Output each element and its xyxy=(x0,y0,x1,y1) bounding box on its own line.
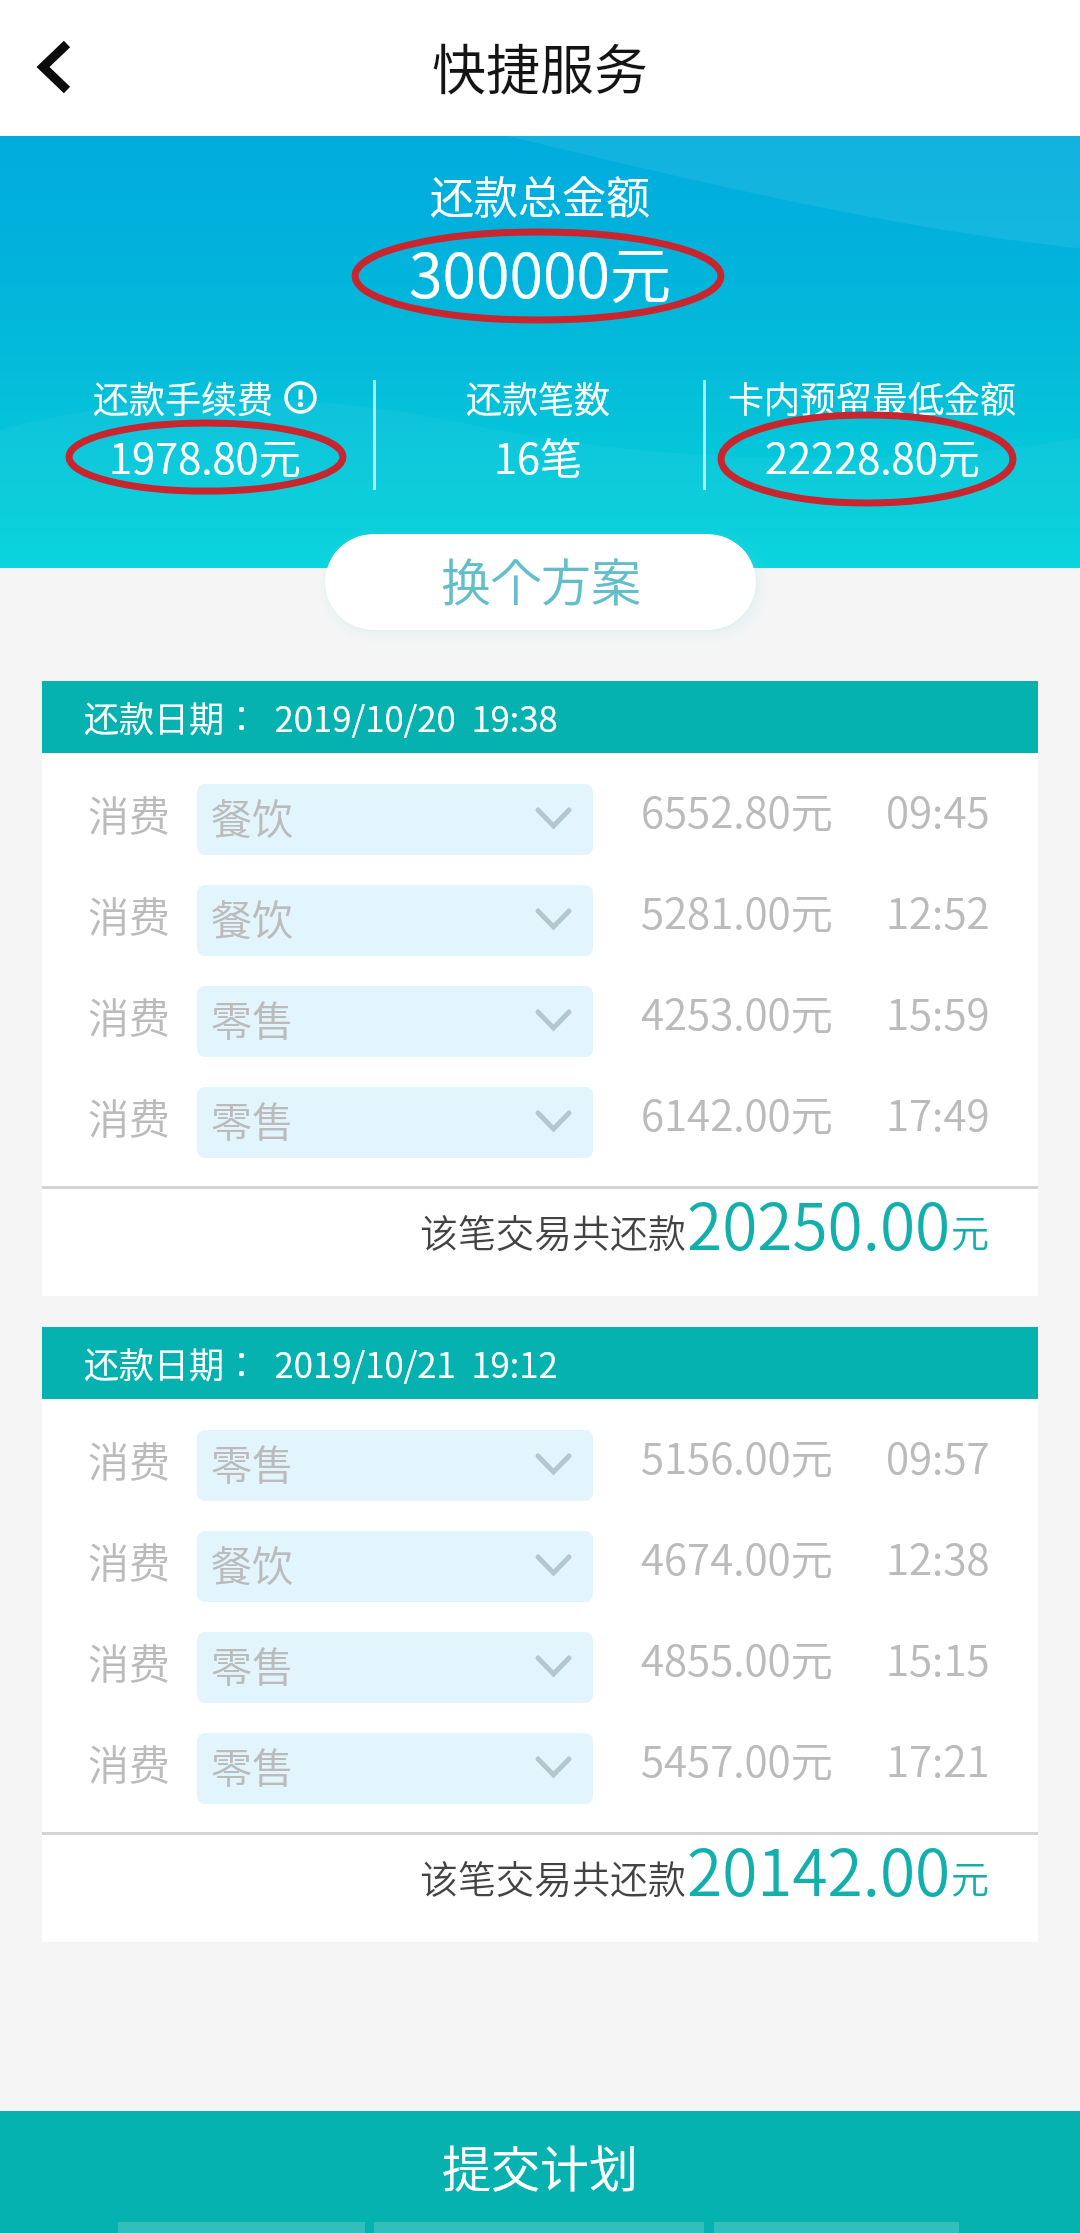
staticText: 5281.00元 xyxy=(641,880,833,941)
staticText: 4253.00元 xyxy=(641,981,833,1042)
staticText: 餐饮 xyxy=(211,786,293,845)
staticText: 消费 xyxy=(88,1631,170,1690)
staticText: 还款总金额 xyxy=(430,163,650,227)
staticText: 还款笔数 xyxy=(466,371,611,423)
button[interactable]: 提交计划 xyxy=(0,2111,1080,2233)
other: Expand xyxy=(535,1655,572,1678)
other: Expand xyxy=(535,1110,572,1133)
staticText: 09:57 xyxy=(886,1425,990,1486)
staticText: 消费 xyxy=(88,884,170,943)
button[interactable]: 餐饮 xyxy=(197,784,593,855)
staticText: 餐饮 xyxy=(211,1533,293,1592)
staticText: 17:49 xyxy=(886,1082,990,1143)
other: Expand xyxy=(535,1756,572,1779)
staticText: 4674.00元 xyxy=(641,1526,833,1587)
staticText: 餐饮 xyxy=(211,887,293,946)
staticText: 该笔交易共还款 xyxy=(420,1849,687,1904)
staticText: 09:45 xyxy=(886,779,990,840)
staticText: 4855.00元 xyxy=(641,1627,833,1688)
staticText: 零售 xyxy=(211,1432,293,1491)
other: Expand xyxy=(535,1009,572,1032)
staticText: 消费 xyxy=(88,985,170,1044)
staticText: 1978.80元 xyxy=(109,425,301,486)
staticText: 22228.80元 xyxy=(765,425,980,486)
staticText: 12:38 xyxy=(886,1526,990,1587)
staticText: 6142.00元 xyxy=(641,1082,833,1143)
staticText: 6552.80元 xyxy=(641,779,833,840)
staticText: 15:15 xyxy=(886,1627,990,1688)
other: Expand xyxy=(535,807,572,830)
button[interactable]: 零售 xyxy=(197,1733,593,1804)
button[interactable]: Back xyxy=(7,19,103,115)
other: Expand xyxy=(535,1554,572,1577)
staticText: 消费 xyxy=(88,783,170,842)
staticText: 零售 xyxy=(211,1089,293,1148)
staticText: 元 xyxy=(951,1849,990,1904)
button[interactable]: 零售 xyxy=(197,1430,593,1501)
staticText: 该笔交易共还款 xyxy=(420,1203,687,1258)
staticText: 快捷服务 xyxy=(432,27,648,105)
other: Expand xyxy=(535,908,572,931)
button[interactable]: 换个方案 xyxy=(325,534,756,630)
staticText: 20250.00 xyxy=(687,1176,951,1269)
staticText: 5156.00元 xyxy=(641,1425,833,1486)
staticText: 17:21 xyxy=(886,1728,990,1789)
other: Expand xyxy=(535,1453,572,1476)
staticText: 消费 xyxy=(88,1086,170,1145)
staticText: 16笔 xyxy=(494,425,583,486)
button[interactable]: 零售 xyxy=(197,1632,593,1703)
staticText: 还款日期： 2019/10/20 19:38 xyxy=(84,691,558,742)
staticText: 15:59 xyxy=(886,981,990,1042)
staticText: 消费 xyxy=(88,1732,170,1791)
staticText: 消费 xyxy=(88,1530,170,1589)
staticText: 12:52 xyxy=(886,880,990,941)
button[interactable]: 零售 xyxy=(197,986,593,1057)
staticText: 卡内预留最低金额 xyxy=(728,371,1017,423)
staticText: 还款手续费 xyxy=(93,371,274,423)
button[interactable]: 餐饮 xyxy=(197,885,593,956)
button[interactable]: 零售 xyxy=(197,1087,593,1158)
button[interactable]: 餐饮 xyxy=(197,1531,593,1602)
staticText: 5457.00元 xyxy=(641,1728,833,1789)
staticText: 20142.00 xyxy=(687,1822,951,1915)
staticText: 零售 xyxy=(211,1634,293,1693)
staticText: 零售 xyxy=(211,1735,293,1794)
staticText: 元 xyxy=(951,1203,990,1258)
staticText: 消费 xyxy=(88,1429,170,1488)
staticText: 零售 xyxy=(211,988,293,1047)
staticText: 提交计划 xyxy=(442,2130,639,2201)
staticText: 300000元 xyxy=(409,227,671,315)
staticText: 还款日期： 2019/10/21 19:12 xyxy=(84,1337,558,1388)
staticText: 换个方案 xyxy=(441,543,641,615)
